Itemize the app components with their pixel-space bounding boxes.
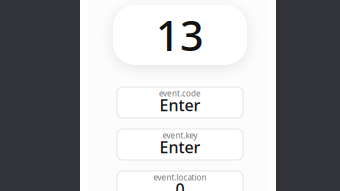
staticText: 0 (175, 178, 184, 191)
button[interactable]: 13 (113, 5, 247, 65)
staticText: event.code (159, 88, 201, 99)
staticText: 13 (156, 8, 204, 62)
staticText: event.location (153, 172, 206, 183)
button[interactable]: event.code (117, 87, 243, 118)
staticText: Enter (159, 94, 200, 116)
button[interactable]: event.key (117, 129, 243, 160)
staticText: Enter (159, 136, 200, 158)
staticText: event.key (162, 130, 197, 141)
button[interactable]: event.location (117, 171, 243, 191)
